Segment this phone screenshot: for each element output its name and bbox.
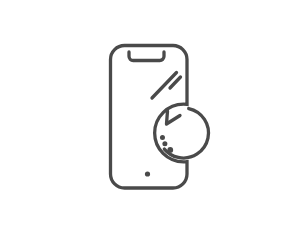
button[interactable]: Phone refresh / restart icon xyxy=(0,0,297,240)
